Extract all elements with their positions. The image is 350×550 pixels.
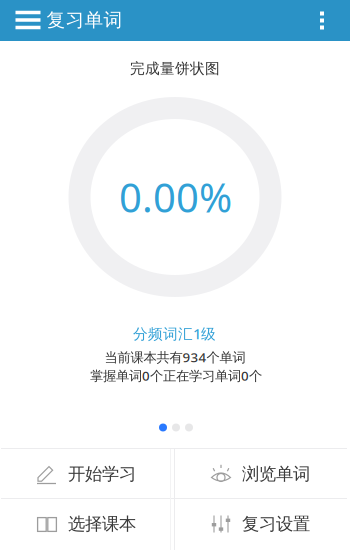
staticText: 开始学习	[68, 463, 136, 485]
button[interactable]: 复习设置	[176, 499, 344, 548]
staticText: 分频词汇1级	[133, 324, 216, 343]
button[interactable]: Menu	[7, 0, 49, 40]
button[interactable]: 选择课本	[2, 499, 170, 548]
staticText: 当前课本共有934个单词	[104, 348, 245, 366]
staticText: 完成量饼状图	[130, 59, 220, 77]
button[interactable]: 开始学习	[2, 449, 170, 498]
staticText: 复习设置	[242, 513, 310, 535]
staticText: 0.00%	[119, 170, 232, 223]
button[interactable]: More options	[302, 0, 342, 41]
staticText: 选择课本	[68, 513, 136, 535]
staticText: 掌握单词0个正在学习单词0个	[90, 367, 262, 384]
staticText: 复习单词	[46, 8, 122, 31]
button[interactable]: 浏览单词	[176, 449, 344, 498]
staticText: 浏览单词	[242, 463, 310, 485]
